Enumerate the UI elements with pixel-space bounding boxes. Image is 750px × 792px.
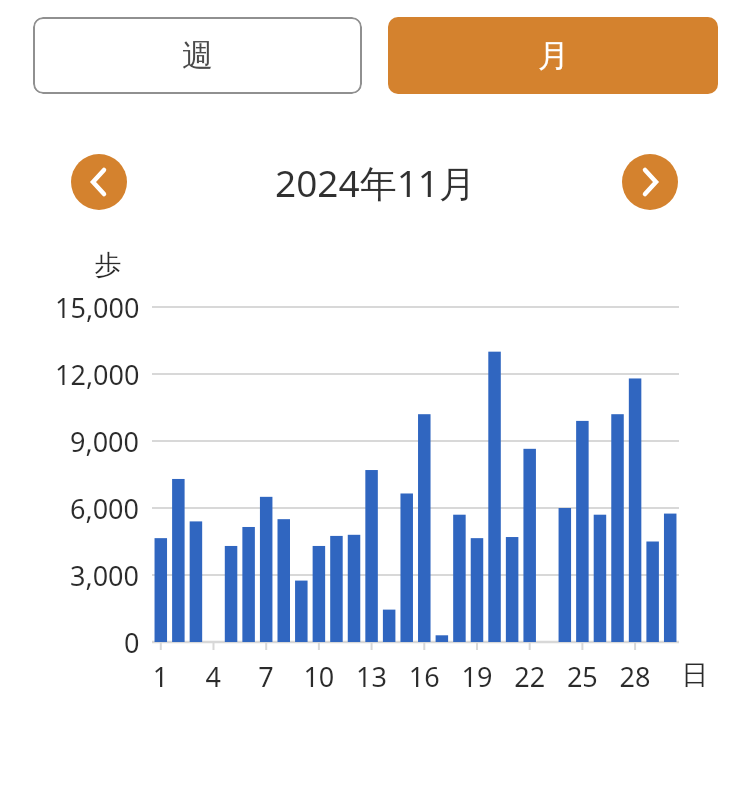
staticText: 週 xyxy=(182,36,213,75)
button[interactable]: 週 xyxy=(33,17,362,94)
button[interactable]: 月 xyxy=(388,17,718,94)
button[interactable]: 前の月 xyxy=(71,154,127,210)
staticText: 2024年11月 xyxy=(275,157,476,208)
button[interactable]: 次の月 xyxy=(622,154,678,210)
staticText: 月 xyxy=(538,36,569,75)
